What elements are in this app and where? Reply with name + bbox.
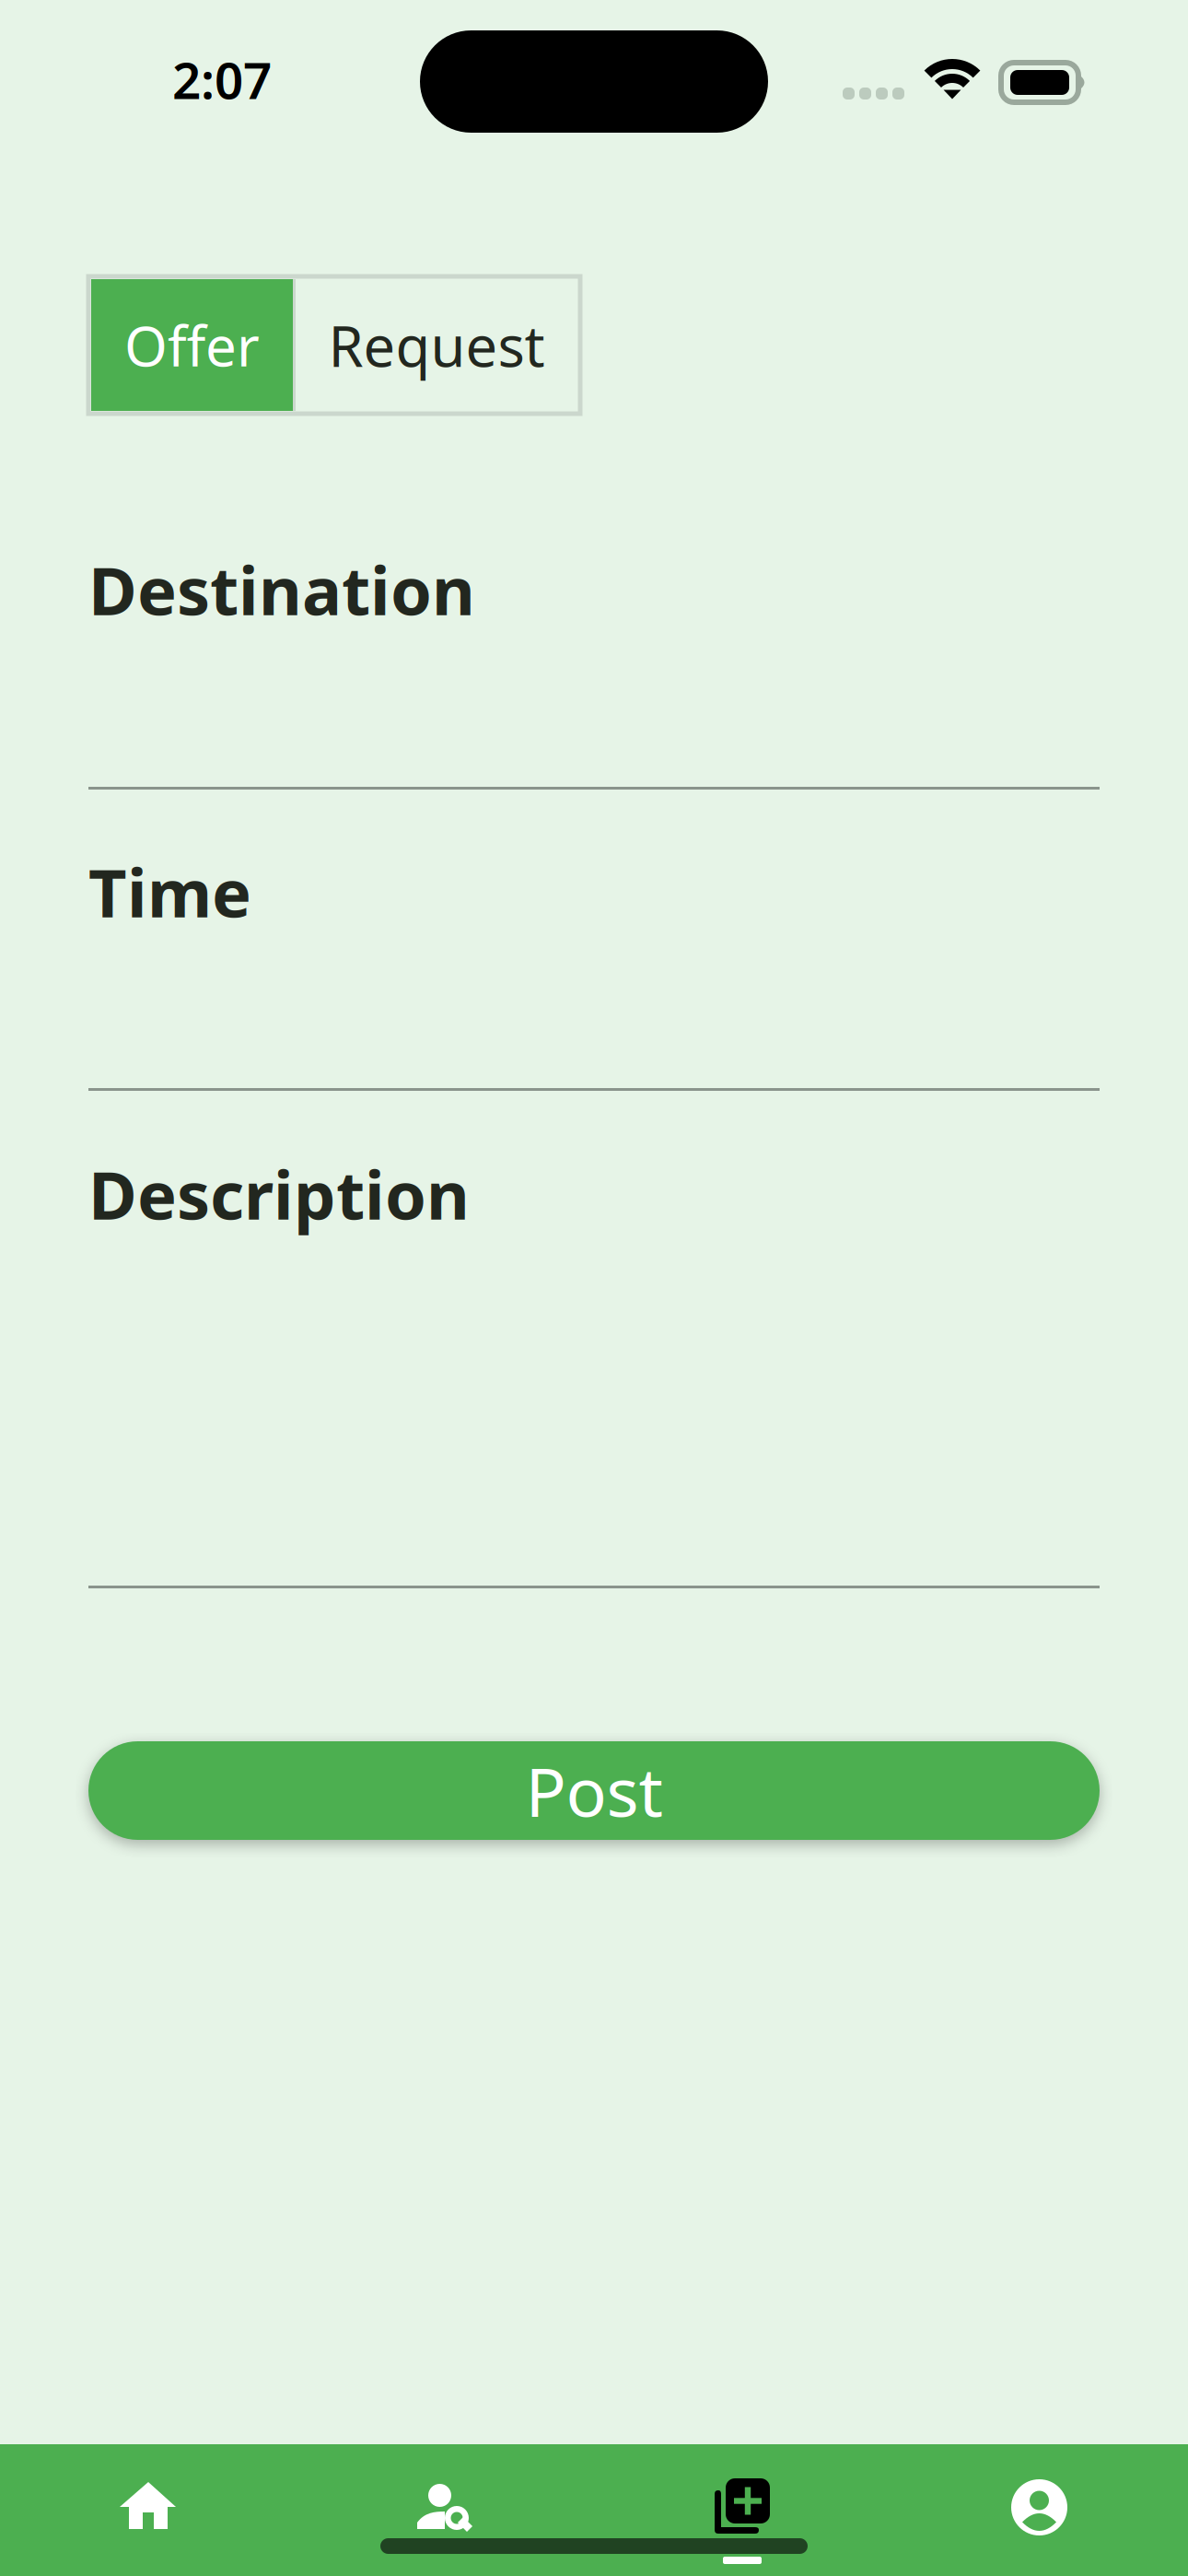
staticText: 2:07 [172,46,272,113]
staticText: Destination [88,545,475,633]
button[interactable]: Home [0,2444,297,2576]
button[interactable]: Profile [891,2444,1188,2576]
staticText: Post [525,1746,663,1835]
button[interactable]: Offer [91,279,293,411]
button[interactable]: Post a ride [594,2444,891,2576]
button[interactable]: Description [88,1150,1100,1588]
staticText: Time [88,848,251,936]
button[interactable]: Destination [88,545,1100,790]
staticText: Description [88,1150,470,1238]
button[interactable]: Find a ride [297,2444,593,2576]
button[interactable]: Time [88,848,1100,1091]
button[interactable]: Request [296,279,577,411]
staticText: Request [328,308,545,383]
staticText: Offer [124,308,260,382]
button[interactable]: Post [88,1741,1100,1840]
